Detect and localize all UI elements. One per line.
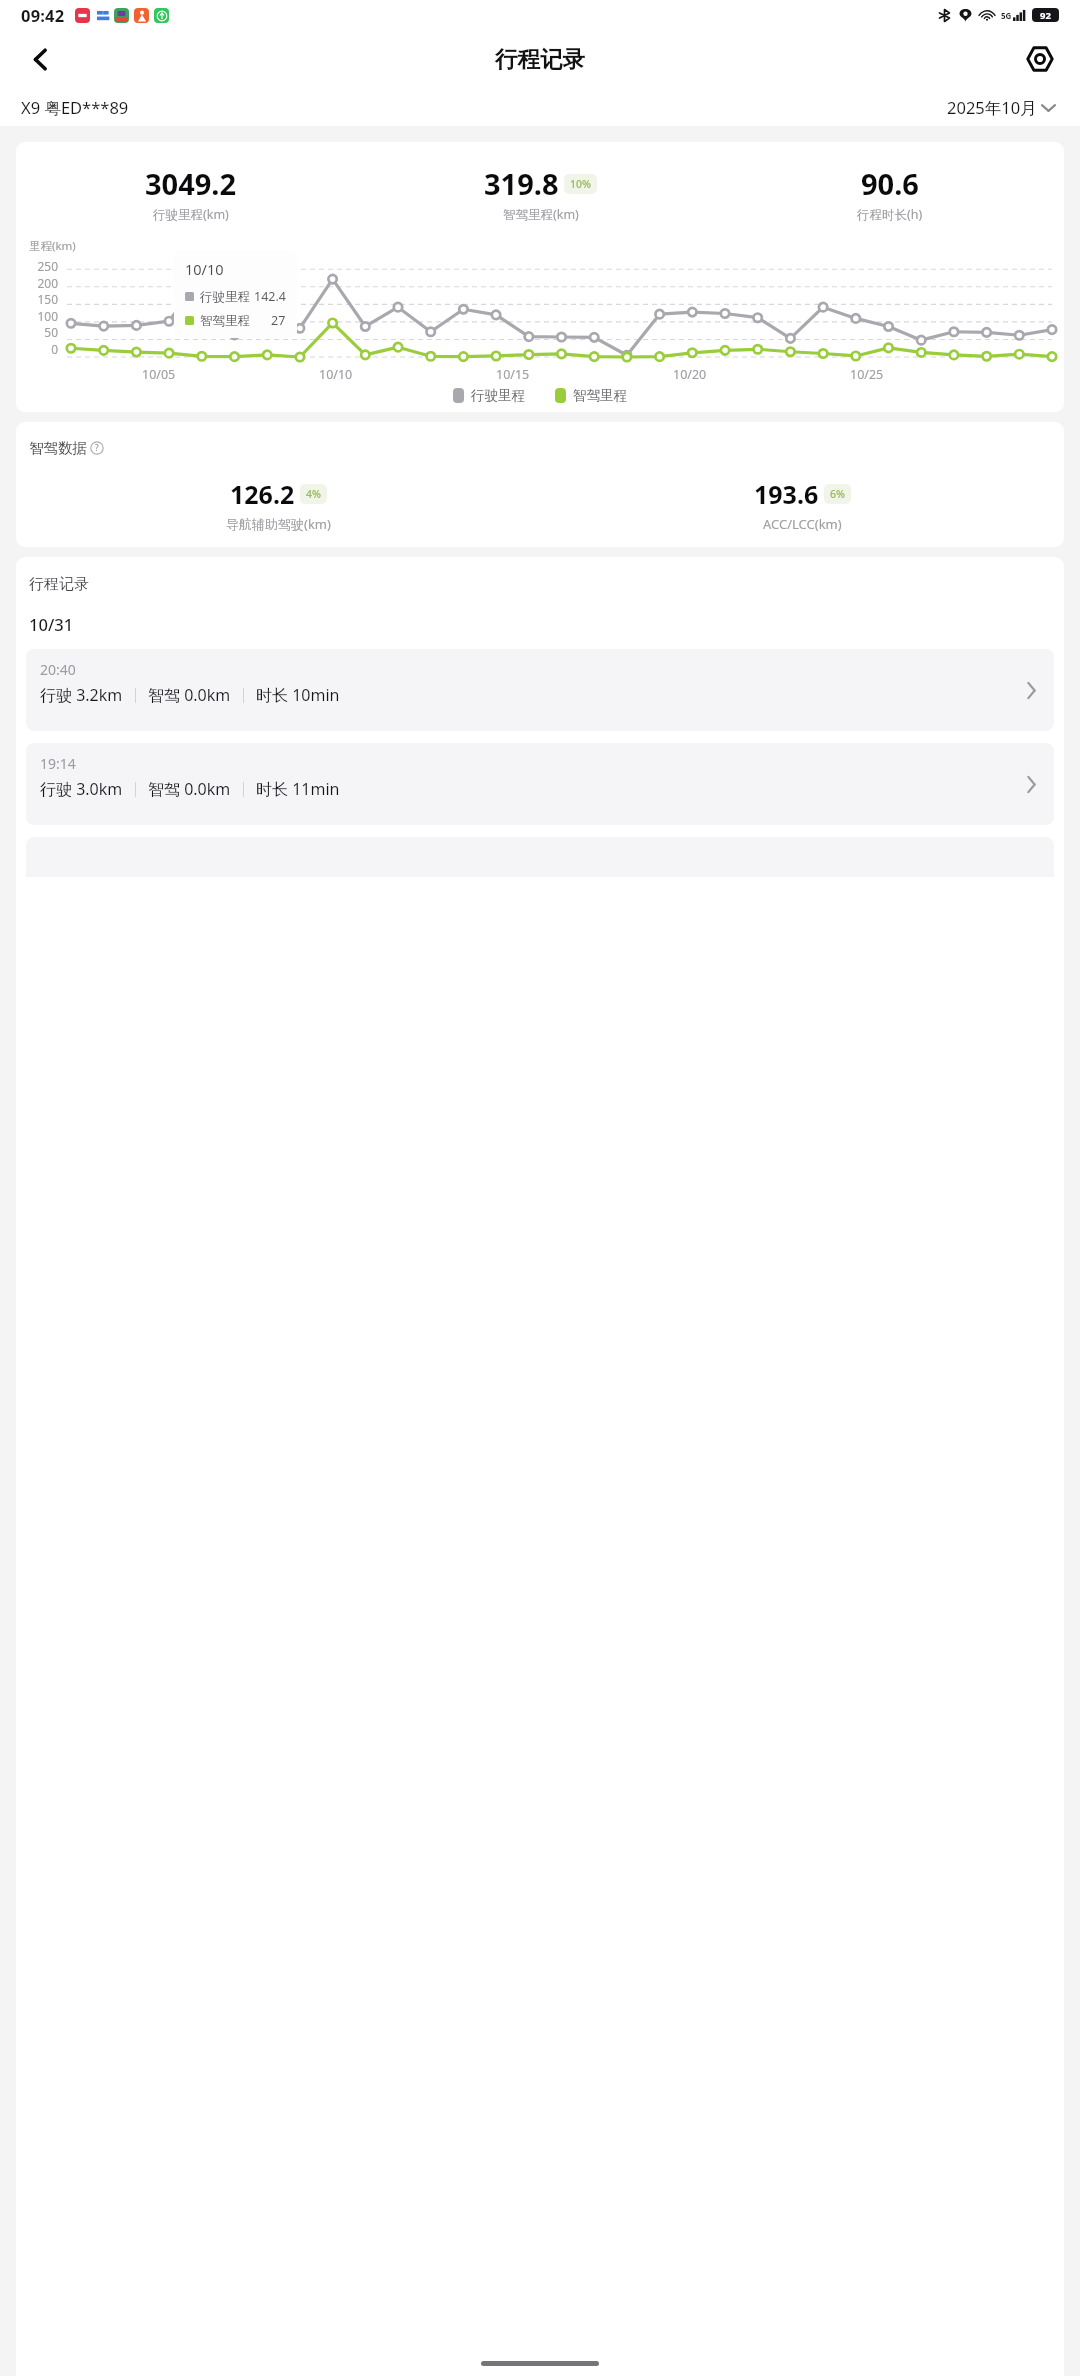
staticText: 100 bbox=[37, 308, 58, 324]
staticText: 行程时长(h) bbox=[857, 206, 923, 223]
staticText: 行程记录 bbox=[29, 575, 89, 594]
staticText: 150 bbox=[37, 291, 58, 307]
staticText: 2025年10月 bbox=[947, 96, 1037, 119]
staticText: 智驾里程 bbox=[200, 313, 250, 329]
staticText: 时长 11min bbox=[256, 778, 340, 800]
staticText: 92 bbox=[1040, 9, 1051, 22]
staticText: 10/10 bbox=[185, 259, 224, 279]
staticText: 20:40 bbox=[40, 660, 76, 679]
staticText: 10/10 bbox=[319, 366, 353, 383]
staticText: 319.8 bbox=[484, 164, 559, 203]
button[interactable]: 19:14 bbox=[26, 743, 1054, 825]
button[interactable]: 行驶里程 bbox=[451, 385, 527, 406]
staticText: 10/05 bbox=[142, 366, 176, 383]
staticText: 142.4 bbox=[254, 288, 286, 305]
staticText: 10/20 bbox=[673, 366, 707, 383]
staticText: 250 bbox=[37, 258, 58, 274]
staticText: 时长 10min bbox=[256, 684, 340, 706]
staticText: 智驾数据 bbox=[29, 439, 87, 457]
staticText: 里程(km) bbox=[29, 238, 76, 254]
staticText: 193.6 bbox=[754, 477, 819, 511]
staticText: 导航辅助驾驶(km) bbox=[226, 515, 331, 533]
staticText: ACC/LCC(km) bbox=[763, 515, 842, 533]
staticText: 27 bbox=[271, 312, 286, 329]
button[interactable]: Settings bbox=[1014, 33, 1066, 85]
staticText: 智驾 0.0km bbox=[148, 778, 231, 800]
staticText: 行程记录 bbox=[495, 45, 585, 73]
staticText: 5G bbox=[1001, 10, 1012, 21]
staticText: ? bbox=[95, 442, 99, 454]
staticText: X9 粤ED***89 bbox=[21, 96, 129, 119]
button[interactable]: 20:40 bbox=[26, 649, 1054, 731]
staticText: 6% bbox=[830, 487, 845, 501]
staticText: 10/31 bbox=[29, 613, 74, 635]
staticText: 行驶里程 bbox=[471, 387, 525, 404]
staticText: 10% bbox=[570, 177, 591, 191]
staticText: 智驾里程(km) bbox=[503, 206, 579, 223]
staticText: 行驶 3.0km bbox=[40, 778, 123, 800]
staticText: 200 bbox=[37, 275, 58, 291]
button[interactable]: Back bbox=[14, 33, 66, 85]
staticText: 10/25 bbox=[850, 366, 884, 383]
staticText: 19:14 bbox=[40, 754, 76, 773]
staticText: 50 bbox=[44, 324, 58, 340]
staticText: 09:42 bbox=[21, 4, 65, 26]
staticText: 行驶里程(km) bbox=[153, 206, 229, 223]
button[interactable]: 2025年10月 bbox=[943, 92, 1059, 123]
staticText: 3049.2 bbox=[145, 164, 237, 203]
staticText: 90.6 bbox=[861, 164, 919, 203]
staticText: 智驾里程 bbox=[573, 387, 627, 404]
staticText: 行驶里程 bbox=[200, 289, 250, 305]
staticText: 0 bbox=[51, 341, 58, 357]
staticText: 10/15 bbox=[496, 366, 530, 383]
staticText: 126.2 bbox=[230, 477, 295, 511]
staticText: 智驾 0.0km bbox=[148, 684, 231, 706]
staticText: 4% bbox=[306, 487, 321, 501]
button[interactable]: 智驾里程 bbox=[553, 385, 629, 406]
button[interactable]: Help bbox=[90, 441, 104, 455]
staticText: 行驶 3.2km bbox=[40, 684, 123, 706]
